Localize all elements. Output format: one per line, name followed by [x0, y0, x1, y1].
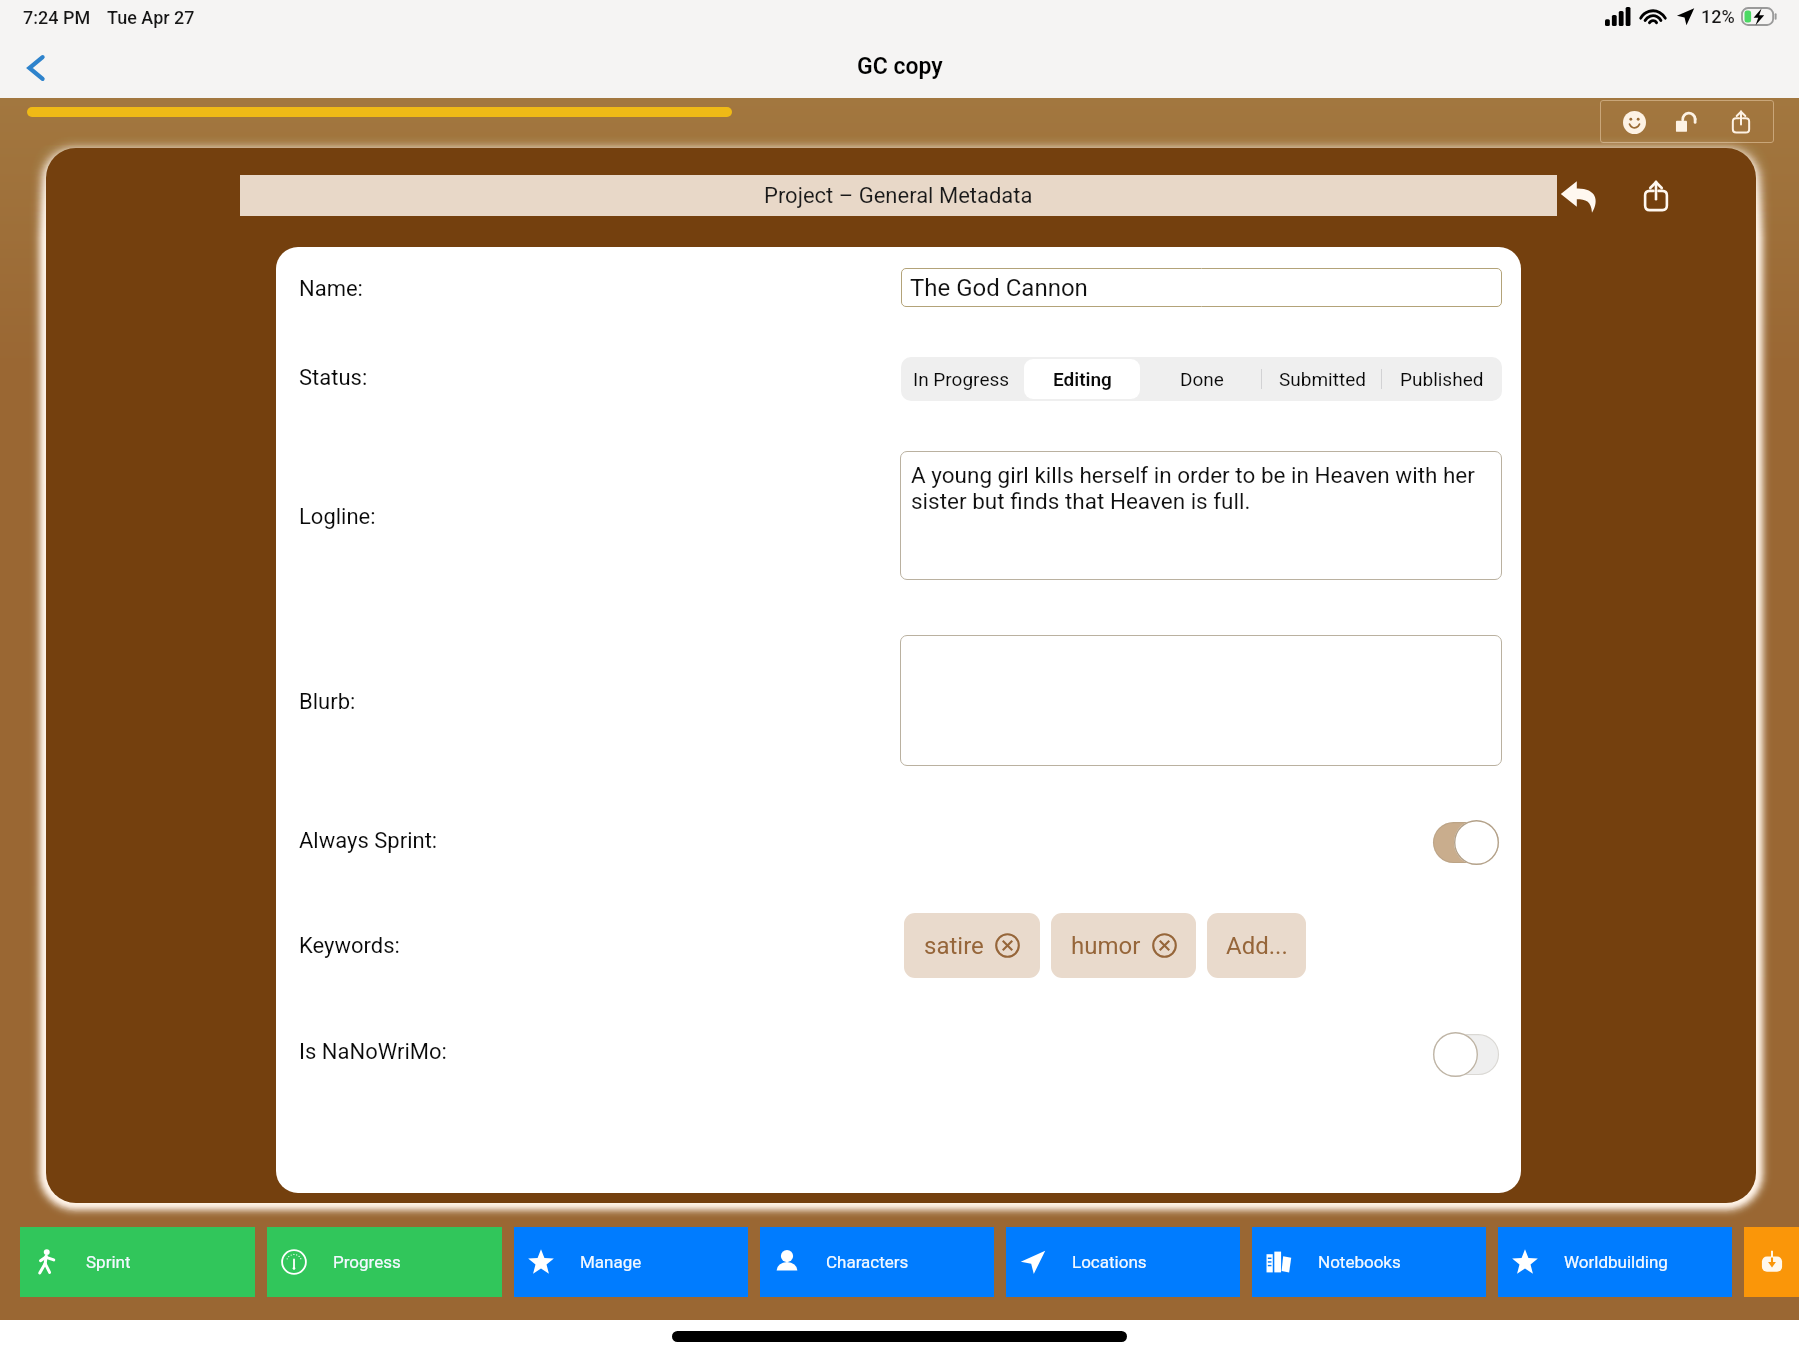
button[interactable]: Locations	[1006, 1227, 1240, 1297]
staticText: Sprint	[86, 1252, 131, 1272]
staticText: Project – General Metadata	[764, 183, 1033, 209]
staticText: Editing	[1053, 368, 1112, 390]
staticText: Keywords:	[299, 933, 400, 959]
staticText: humor	[1071, 932, 1141, 960]
staticText: Add...	[1226, 932, 1288, 960]
button[interactable]: Enabled	[1433, 820, 1499, 865]
button[interactable]: humor	[1051, 913, 1196, 978]
button[interactable]: Worldbuilding	[1498, 1227, 1732, 1297]
button[interactable]: A young girl kills herself in order to b…	[900, 451, 1502, 580]
button[interactable]: Add...	[1207, 913, 1306, 978]
staticText: satire	[924, 932, 984, 960]
staticText: Always Sprint:	[299, 828, 438, 854]
staticText: Worldbuilding	[1564, 1252, 1668, 1272]
button[interactable]: Done	[1144, 359, 1260, 399]
staticText: In Progress	[913, 368, 1010, 390]
staticText: Status:	[299, 365, 368, 391]
button[interactable]: In Progress	[903, 359, 1020, 399]
button[interactable]: Disabled	[1433, 1032, 1499, 1077]
button[interactable]: Published	[1384, 359, 1500, 399]
staticText: Is NaNoWriMo:	[299, 1039, 447, 1065]
staticText: 12%	[1701, 6, 1735, 27]
button[interactable]: Submitted	[1264, 359, 1380, 399]
button[interactable]: Share	[1721, 102, 1761, 142]
button[interactable]: Characters	[760, 1227, 994, 1297]
button[interactable]: Back	[12, 44, 60, 92]
button[interactable]: The God Cannon	[901, 268, 1502, 307]
button[interactable]: Notebooks	[1252, 1227, 1486, 1297]
button[interactable]: Project – General Metadata	[240, 175, 1557, 216]
staticText: Submitted	[1279, 368, 1366, 390]
staticText: Tue Apr 27	[107, 7, 195, 28]
staticText: Progress	[333, 1252, 401, 1272]
staticText: Blurb:	[299, 689, 356, 715]
button[interactable]: Save	[1744, 1227, 1799, 1297]
button[interactable]: Sprint	[20, 1227, 255, 1297]
button[interactable]: Mood	[1614, 102, 1654, 142]
staticText: A young girl kills herself in order to b…	[911, 462, 1491, 514]
button[interactable]: Unlock	[1667, 102, 1707, 142]
button[interactable]: Editing	[1024, 359, 1140, 399]
staticText: GC copy	[857, 53, 943, 80]
staticText: Locations	[1072, 1252, 1147, 1272]
button[interactable]: Manage	[514, 1227, 748, 1297]
staticText: Logline:	[299, 504, 376, 530]
button[interactable]: Undo	[1552, 168, 1608, 224]
button[interactable]: Export	[1628, 168, 1684, 224]
button[interactable]	[900, 635, 1502, 766]
staticText: Notebooks	[1318, 1252, 1401, 1272]
button[interactable]: satire	[904, 913, 1040, 978]
staticText: The God Cannon	[910, 274, 1088, 302]
staticText: 7:24 PM	[23, 7, 91, 28]
staticText: Name:	[299, 276, 363, 302]
staticText: Characters	[826, 1252, 909, 1272]
button[interactable]: Progress	[267, 1227, 502, 1297]
staticText: Published	[1400, 368, 1484, 390]
staticText: Manage	[580, 1252, 642, 1272]
staticText: Done	[1180, 368, 1224, 390]
